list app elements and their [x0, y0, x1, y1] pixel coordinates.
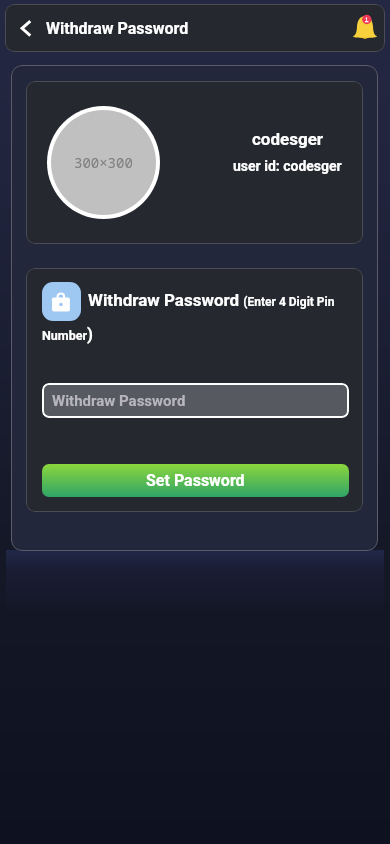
button[interactable]: Back — [9, 11, 43, 45]
button[interactable]: Set Password — [42, 464, 349, 497]
button[interactable]: Notifications — [348, 11, 382, 45]
staticText: Withdraw Password — [46, 19, 189, 38]
button[interactable]: Withdraw Password — [42, 383, 349, 418]
staticText: Withdraw Password (Enter 4 Digit Pin — [88, 290, 335, 310]
staticText: Number) — [42, 324, 93, 344]
staticText: Withdraw Password — [52, 392, 186, 410]
staticText: Set Password — [146, 471, 245, 490]
staticText: user id: codesger — [233, 158, 342, 174]
staticText: codesger — [252, 129, 324, 149]
staticText: 300×300 — [74, 153, 133, 172]
